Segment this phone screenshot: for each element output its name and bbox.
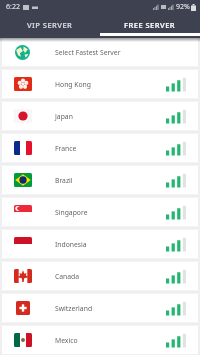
button[interactable]: Switzerland bbox=[2, 294, 198, 322]
staticText: VIP SERVER bbox=[27, 20, 73, 30]
button[interactable]: Canada bbox=[2, 262, 198, 290]
staticText: Switzerland bbox=[55, 304, 93, 313]
staticText: Mexico bbox=[55, 336, 78, 345]
staticText: Hong Kong bbox=[55, 80, 91, 89]
button[interactable]: Brazil bbox=[2, 166, 198, 194]
button[interactable]: Hong Kong bbox=[2, 70, 198, 98]
button[interactable]: FREE SERVER bbox=[100, 14, 200, 38]
button[interactable]: Japan bbox=[2, 102, 198, 130]
staticText: France bbox=[55, 144, 77, 153]
staticText: FREE SERVER bbox=[124, 20, 176, 30]
staticText: Select Fastest Server bbox=[55, 48, 121, 57]
staticText: Japan bbox=[55, 112, 73, 121]
button[interactable]: France bbox=[2, 134, 198, 162]
staticText: Singapore bbox=[55, 208, 88, 217]
button[interactable]: VIP SERVER bbox=[0, 14, 100, 38]
button[interactable]: Singapore bbox=[2, 198, 198, 226]
staticText: Brazil bbox=[55, 176, 73, 185]
button[interactable]: Select Fastest Server bbox=[2, 38, 198, 66]
staticText: 6:22 bbox=[6, 2, 20, 12]
button[interactable]: Mexico bbox=[2, 326, 198, 354]
staticText: 92% bbox=[176, 2, 190, 12]
button[interactable]: Indonesia bbox=[2, 230, 198, 258]
staticText: Canada bbox=[55, 272, 80, 281]
staticText: Indonesia bbox=[55, 240, 87, 249]
